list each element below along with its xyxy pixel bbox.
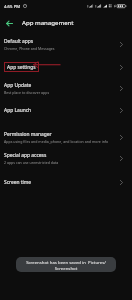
staticText: Permission manager	[4, 131, 52, 138]
button[interactable]: Special app access	[0, 150, 132, 167]
staticText: Default apps	[4, 38, 34, 45]
button[interactable]: Permission manager	[0, 129, 132, 146]
button[interactable]: Screen time	[0, 176, 132, 188]
staticText: 4:55 PM	[4, 3, 21, 9]
button[interactable]: Back	[3, 17, 15, 29]
staticText: Screenshot has been saved in Pictures/ S…	[26, 259, 106, 271]
staticText: Best place to discover apps	[4, 90, 50, 95]
staticText: App settings	[7, 64, 36, 71]
staticText: Screen time	[4, 179, 32, 186]
button[interactable]: App settings	[0, 61, 132, 73]
staticText: Apps using files and media, phone, and l…	[4, 139, 109, 144]
button[interactable]: App Update	[0, 80, 132, 97]
button[interactable]: App Launch	[0, 104, 132, 116]
staticText: App management	[22, 18, 74, 26]
staticText: 2 apps can use unrestricted data	[4, 160, 59, 165]
button[interactable]: Default apps	[0, 36, 132, 53]
staticText: Special app access	[4, 152, 47, 159]
staticText: App Update	[4, 82, 32, 89]
staticText: Chrome, Phone and Messages	[4, 46, 55, 51]
staticText: App Launch	[4, 107, 32, 114]
